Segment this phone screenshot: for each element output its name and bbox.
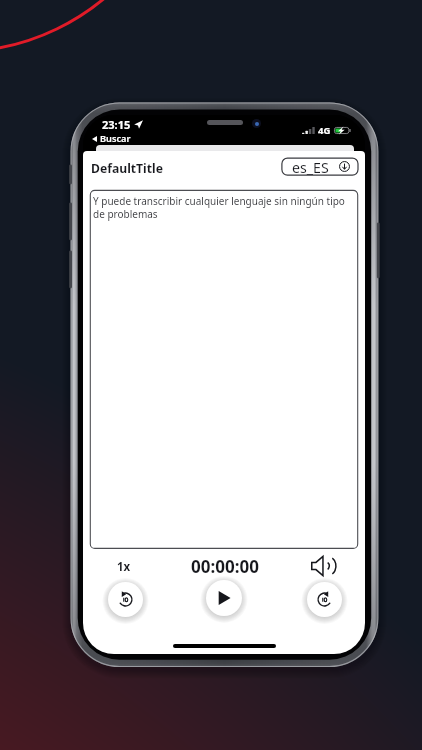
button[interactable]: Rewind 10 seconds — [108, 582, 143, 617]
staticText: Y puede transcribir cualquier lenguaje s… — [93, 194, 351, 221]
staticText: DefaultTitle — [91, 160, 163, 177]
button[interactable]: Play — [206, 580, 242, 616]
button[interactable]: Forward 10 seconds — [307, 582, 342, 617]
staticText: 1x — [117, 559, 131, 575]
staticText: es_ES — [292, 158, 329, 175]
button[interactable]: 1x — [111, 557, 137, 577]
staticText: Buscar — [100, 132, 131, 145]
staticText: 23:15 — [102, 117, 131, 132]
staticText: 00:00:00 — [191, 555, 259, 578]
button[interactable]: Buscar — [92, 132, 131, 145]
staticText: 4G — [318, 124, 331, 137]
button[interactable]: es_ES — [282, 158, 358, 175]
button[interactable]: Volume — [304, 550, 343, 582]
